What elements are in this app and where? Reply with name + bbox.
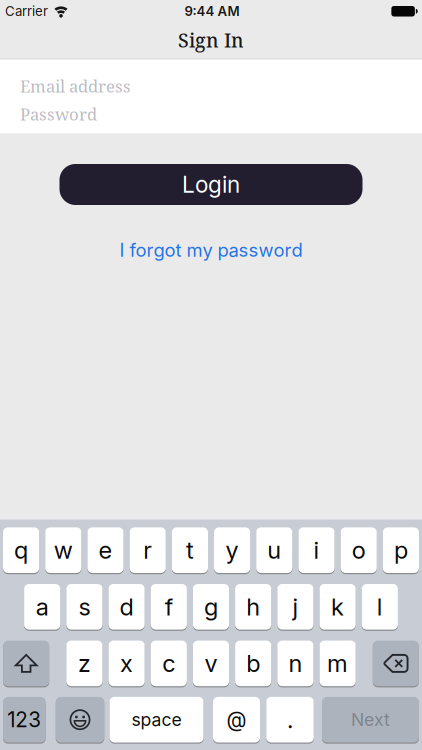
staticText: Password <box>20 103 97 125</box>
button[interactable]: v <box>193 640 229 687</box>
button[interactable]: e <box>87 526 124 574</box>
button[interactable]: Delete <box>373 640 419 687</box>
staticText: y <box>226 536 239 564</box>
staticText: c <box>162 649 175 678</box>
button[interactable]: h <box>235 583 271 631</box>
staticText: j <box>292 592 298 621</box>
staticText: Sign In <box>178 27 244 53</box>
button[interactable]: j <box>277 583 313 631</box>
button[interactable]: Shift <box>3 640 49 687</box>
staticText: u <box>267 536 281 564</box>
staticText: Login <box>182 171 240 198</box>
button[interactable]: w <box>45 526 81 574</box>
staticText: @ <box>226 707 246 732</box>
button[interactable]: Next <box>322 696 419 743</box>
button[interactable]: I forgot my password <box>119 239 302 261</box>
staticText: z <box>78 649 91 678</box>
button[interactable]: z <box>66 640 102 687</box>
staticText: I forgot my password <box>119 239 302 261</box>
button[interactable]: x <box>108 640 145 687</box>
staticText: h <box>246 592 260 621</box>
staticText: 9:44 AM <box>184 3 239 19</box>
staticText: m <box>327 649 348 678</box>
staticText: 123 <box>7 707 41 732</box>
staticText: Carrier <box>5 3 48 19</box>
button[interactable]: 123 <box>3 696 46 743</box>
button[interactable]: i <box>298 526 335 574</box>
button[interactable]: g <box>193 583 229 631</box>
button[interactable]: Password <box>0 100 422 128</box>
button[interactable]: @ <box>213 696 260 743</box>
button[interactable]: Email address <box>0 72 422 100</box>
button[interactable]: b <box>235 640 271 687</box>
button[interactable]: f <box>151 583 187 631</box>
staticText: r <box>143 536 152 564</box>
staticText: l <box>377 592 383 621</box>
staticText: f <box>165 592 173 621</box>
staticText: s <box>78 592 90 621</box>
button[interactable]: y <box>214 526 250 574</box>
staticText: i <box>313 536 319 564</box>
button[interactable]: . <box>266 696 314 743</box>
button[interactable]: m <box>319 640 356 687</box>
button[interactable]: p <box>383 526 419 574</box>
button[interactable]: Login <box>59 164 362 205</box>
button[interactable]: u <box>256 526 292 574</box>
staticText: e <box>98 536 112 564</box>
staticText: Email address <box>20 75 131 97</box>
button[interactable]: s <box>66 583 102 631</box>
button[interactable]: l <box>362 583 398 631</box>
staticText: d <box>120 592 134 621</box>
staticText: n <box>288 649 302 678</box>
staticText: p <box>394 536 408 564</box>
button[interactable]: o <box>341 526 377 574</box>
button[interactable]: n <box>277 640 313 687</box>
button[interactable]: a <box>24 583 60 631</box>
staticText: x <box>120 649 133 678</box>
staticText: g <box>204 592 218 621</box>
staticText: Next <box>351 709 390 730</box>
button[interactable]: k <box>319 583 356 631</box>
button[interactable]: space <box>109 696 203 743</box>
staticText: v <box>204 649 217 678</box>
button[interactable]: t <box>172 526 208 574</box>
staticText: t <box>186 536 194 564</box>
button[interactable]: q <box>3 526 39 574</box>
staticText: q <box>14 536 28 564</box>
staticText: . <box>287 706 293 734</box>
staticText: space <box>131 709 181 730</box>
button[interactable]: c <box>151 640 187 687</box>
staticText: a <box>36 592 49 621</box>
button[interactable]: r <box>130 526 166 574</box>
button[interactable]: d <box>108 583 145 631</box>
staticText: w <box>54 536 73 564</box>
staticText: k <box>331 592 344 621</box>
staticText: b <box>246 649 260 678</box>
button[interactable]: Emoji <box>56 696 104 743</box>
staticText: o <box>352 536 366 564</box>
